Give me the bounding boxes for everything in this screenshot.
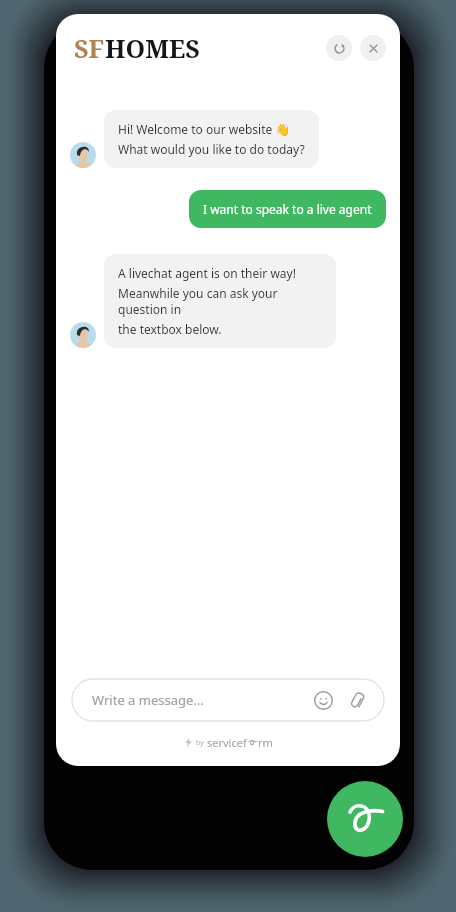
button[interactable]: Close chat (360, 35, 386, 61)
staticText: I want to speak to a live agent (203, 201, 372, 217)
staticText: the textbox below. (118, 321, 222, 337)
staticText: Meanwhile you can ask your question in (118, 285, 322, 317)
staticText: A livechat agent is on their way! (118, 265, 296, 281)
staticText: What would you like to do today? (118, 141, 305, 157)
staticText: Hi! Welcome to our website 👋 (118, 121, 291, 137)
staticText: Write a message... (92, 691, 204, 709)
button[interactable]: Attach file (344, 687, 370, 713)
button[interactable]: Write a message... (72, 679, 384, 721)
staticText: servicef (207, 735, 247, 750)
staticText: rm (258, 735, 273, 750)
button[interactable]: A livechat agent is on their way! (104, 254, 336, 348)
staticText: SF (74, 31, 105, 65)
staticText: by (196, 738, 204, 748)
button[interactable]: Insert emoji (310, 687, 336, 713)
button[interactable]: Restart conversation (326, 35, 352, 61)
button[interactable]: Hi! Welcome to our website 👋 (104, 110, 319, 168)
staticText: HOMES (105, 31, 200, 65)
button[interactable]: Open chat (327, 781, 403, 857)
button[interactable]: I want to speak to a live agent (189, 190, 386, 228)
